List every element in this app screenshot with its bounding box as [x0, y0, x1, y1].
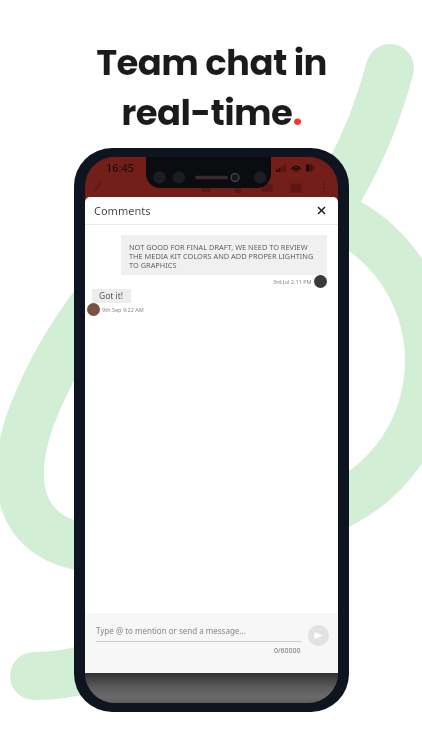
button[interactable]: Send message — [308, 625, 329, 646]
staticText: 3rd Jul 2:11 PM — [273, 278, 312, 285]
staticText: 9th Sep 9:22 AM — [102, 306, 144, 313]
staticText: real-time. — [121, 88, 302, 138]
staticText: Comments — [94, 203, 151, 218]
button[interactable]: Close comments — [313, 202, 330, 219]
staticText: 16:45 — [106, 160, 135, 175]
staticText: Got it! — [99, 290, 124, 302]
staticText: Type @ to mention or send a message... — [96, 625, 246, 636]
staticText: Team chat in — [96, 38, 327, 88]
staticText: 0/60000 — [274, 646, 301, 656]
staticText: NOT GOOD FOR FINAL DRAFT, WE NEED TO REV… — [129, 242, 320, 270]
